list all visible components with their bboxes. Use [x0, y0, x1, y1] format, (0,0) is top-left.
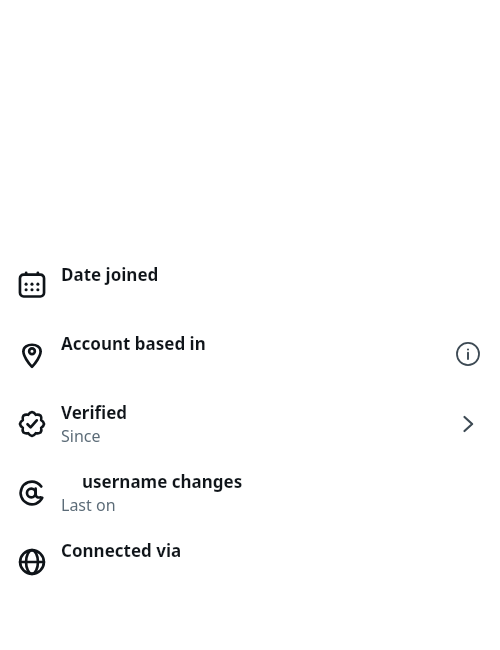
button[interactable]: Open details: [452, 408, 484, 440]
staticText: Since: [61, 425, 101, 447]
button[interactable]: More information: [452, 338, 484, 370]
staticText: Connected via: [61, 539, 182, 562]
button[interactable]: username changes: [0, 459, 500, 527]
button[interactable]: Connected via: [0, 528, 500, 596]
button[interactable]: Account based in: [0, 320, 500, 388]
staticText: Last on: [61, 494, 116, 516]
button[interactable]: Verified: [0, 390, 500, 458]
staticText: username changes: [82, 470, 243, 493]
staticText: Date joined: [61, 263, 159, 286]
staticText: Account based in: [61, 332, 206, 355]
staticText: Verified: [61, 401, 128, 424]
button[interactable]: Date joined: [0, 251, 500, 319]
